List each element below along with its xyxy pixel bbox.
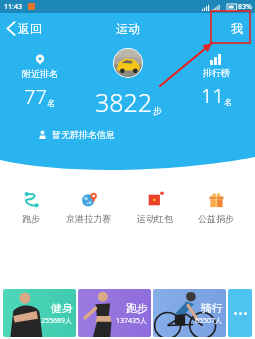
staticText: 健身 — [51, 301, 73, 315]
button[interactable]: 更多 — [228, 289, 252, 337]
staticText: 77 — [24, 83, 47, 110]
button[interactable]: 暂无群排名信息 — [0, 127, 255, 140]
staticText: 运动红包 — [137, 213, 173, 224]
staticText: 排行榜 — [203, 67, 230, 78]
button[interactable]: 返回 — [0, 17, 49, 40]
staticText: 京港拉力赛 — [66, 213, 111, 224]
staticText: 137435人 — [116, 316, 148, 326]
staticText: 11 — [201, 82, 224, 109]
button[interactable]: 附近排名 — [0, 46, 79, 110]
button[interactable]: 京港拉力赛 — [60, 187, 117, 226]
staticText: 返回 — [18, 21, 42, 36]
staticText: 11:43 — [4, 2, 22, 12]
other: 附近排名 — [35, 54, 45, 66]
staticText: 跑步 — [22, 213, 40, 224]
button[interactable]: 头像 — [114, 49, 142, 77]
staticText: 65507人 — [195, 316, 223, 326]
button[interactable]: 运动红包 — [131, 187, 179, 226]
button[interactable]: 排行榜 — [177, 46, 255, 109]
button[interactable]: 我 — [219, 16, 255, 41]
button[interactable]: 跑步 — [15, 187, 47, 226]
staticText: 跑步 — [126, 301, 148, 315]
staticText: 我 — [231, 21, 243, 36]
staticText: 255689人 — [41, 316, 73, 326]
staticText: 步 — [153, 105, 162, 116]
staticText: 公益捐步 — [198, 213, 234, 224]
staticText: 名 — [224, 97, 232, 107]
button[interactable]: 健身 — [3, 289, 76, 337]
staticText: 暂无群排名信息 — [52, 129, 115, 140]
button[interactable]: 骑行 — [153, 289, 226, 337]
button[interactable]: 跑步 — [78, 289, 151, 337]
staticText: 骑行 — [201, 301, 223, 315]
staticText: 运动 — [116, 21, 140, 36]
button[interactable]: 公益捐步 — [192, 187, 240, 226]
other: 排行榜 — [210, 54, 222, 65]
staticText: 附近排名 — [22, 68, 58, 79]
staticText: 83% — [238, 2, 252, 12]
staticText: 3822 — [95, 85, 153, 119]
staticText: 名 — [47, 98, 55, 108]
